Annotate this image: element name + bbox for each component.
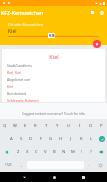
button[interactable]: Bundesland: [7, 91, 101, 102]
staticText: Kiel, Kiel: [7, 70, 22, 75]
button[interactable]: K: [76, 132, 86, 145]
staticText: U: [67, 123, 71, 129]
staticText: D: [29, 136, 33, 142]
staticText: L: [90, 136, 93, 142]
staticText: I: [79, 123, 81, 129]
staticText: Schleswig-Holstein: [7, 98, 39, 102]
button[interactable]: V: [41, 145, 50, 158]
staticText: M: [71, 149, 75, 155]
button[interactable]: A: [6, 132, 16, 145]
button[interactable]: Enter: [96, 132, 107, 145]
button[interactable]: N: [59, 145, 68, 158]
staticText: ?123: [5, 163, 12, 167]
staticText: A: [10, 136, 13, 142]
staticText: X: [26, 149, 29, 155]
button[interactable]: H: [56, 132, 66, 145]
button[interactable]: C: [32, 145, 41, 158]
button[interactable]: Back: [19, 172, 29, 182]
button[interactable]: W: [10, 119, 20, 132]
staticText: Suggest content nonsense? Touch for info…: [22, 112, 86, 116]
button[interactable]: J: [66, 132, 76, 145]
button[interactable]: Add to favourites: [93, 40, 101, 48]
staticText: .: [88, 162, 90, 168]
button[interactable]: !: [77, 145, 86, 158]
staticText: R: [34, 123, 37, 129]
staticText: E: [24, 123, 27, 129]
staticText: H: [59, 136, 63, 142]
button[interactable]: Recent apps: [78, 172, 88, 182]
staticText: Kiel: [7, 84, 14, 89]
button[interactable]: Settings: [97, 8, 106, 17]
staticText: C: [35, 149, 38, 155]
staticText: KFZ-Kennzeichen: [1, 9, 44, 16]
button[interactable]: Stadt/Landkreis: [7, 63, 101, 77]
button[interactable]: P: [96, 119, 107, 132]
staticText: F: [40, 136, 43, 142]
button[interactable]: Abgeleitet von: [7, 77, 101, 91]
button[interactable]: Emoji: [94, 158, 107, 172]
button[interactable]: T: [41, 119, 52, 132]
staticText: Z: [17, 149, 20, 155]
staticText: B: [53, 149, 56, 155]
button[interactable]: M: [68, 145, 77, 158]
button[interactable]: Backspace: [95, 145, 107, 158]
button[interactable]: O: [85, 119, 96, 132]
staticText: V: [44, 149, 47, 155]
button[interactable]: Q: [0, 119, 10, 132]
button[interactable]: I: [74, 119, 85, 132]
staticText: Stadt/Landkreis: [7, 63, 32, 68]
staticText: Bundesland: [7, 91, 26, 96]
staticText: KIE: [49, 33, 55, 38]
button[interactable]: G: [46, 132, 56, 145]
button[interactable]: L: [86, 132, 96, 145]
button[interactable]: S: [16, 132, 26, 145]
button[interactable]: D: [26, 132, 36, 145]
button[interactable]: Y: [52, 119, 63, 132]
staticText: G: [49, 136, 53, 142]
button[interactable]: ?123: [0, 158, 17, 172]
staticText: K: [80, 136, 83, 142]
staticText: Kiel: [7, 53, 101, 60]
staticText: Abgeleitet von: [7, 77, 31, 82]
button[interactable]: Bookmarks: [88, 8, 97, 17]
staticText: ,: [21, 162, 23, 168]
button[interactable]: U: [63, 119, 74, 132]
staticText: !: [81, 149, 83, 155]
button[interactable]: E: [20, 119, 30, 132]
button[interactable]: Z: [13, 145, 23, 158]
staticText: Q: [3, 123, 7, 129]
button[interactable]: F: [36, 132, 46, 145]
staticText: J: [70, 136, 72, 142]
staticText: Kiel: [8, 28, 17, 35]
staticText: W: [13, 123, 17, 129]
button[interactable]: R: [30, 119, 41, 132]
button[interactable]: ?: [86, 145, 95, 158]
staticText: P: [100, 123, 103, 129]
button[interactable]: Home: [49, 172, 59, 182]
button[interactable]: ,: [17, 158, 27, 172]
staticText: Ort oder Kennzeichen: [8, 22, 43, 27]
staticText: O: [89, 123, 93, 129]
staticText: S: [20, 136, 23, 142]
staticText: T: [45, 123, 48, 129]
button[interactable]: B: [50, 145, 59, 158]
button[interactable]: X: [23, 145, 32, 158]
button[interactable]: Shift: [0, 145, 13, 158]
staticText: Y: [56, 123, 59, 129]
staticText: ?: [90, 149, 92, 155]
staticText: N: [62, 149, 66, 155]
